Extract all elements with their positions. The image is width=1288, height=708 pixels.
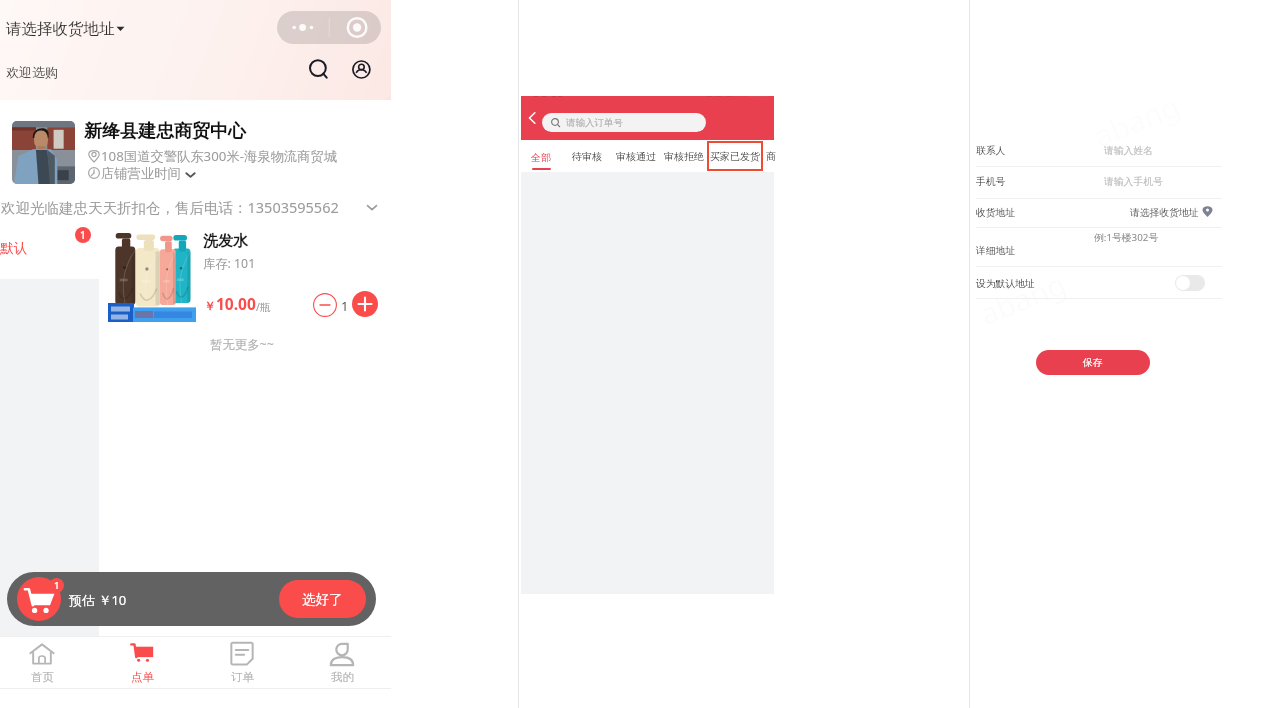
button[interactable]: 首页 — [0, 637, 92, 688]
button[interactable]: 选好了 — [279, 580, 366, 618]
staticText: 1 — [341, 297, 349, 315]
staticText: 点单 — [131, 670, 154, 684]
button[interactable]: 预估 ￥10 — [7, 572, 376, 626]
staticText: 联系人 — [976, 145, 1006, 157]
button[interactable]: 手机号 — [976, 167, 1222, 198]
staticText: 审核拒绝 — [664, 150, 704, 163]
staticText: 订单 — [231, 670, 254, 684]
button[interactable]: 联系人 — [976, 131, 1222, 166]
staticText: 洗发水 — [203, 232, 248, 251]
button[interactable]: 审核通过 — [612, 140, 652, 172]
button[interactable]: 减少数量 — [313, 293, 337, 317]
staticText: abang — [974, 263, 1072, 334]
staticText: 1 — [80, 228, 86, 242]
button[interactable]: 增加数量 — [352, 291, 378, 317]
staticText: ￥ — [204, 299, 216, 313]
button[interactable]: 保存 — [1036, 350, 1150, 375]
button[interactable]: 买家已发货 — [706, 140, 756, 172]
staticText: 库存: 101 — [203, 255, 256, 272]
staticText: 10.00 — [216, 293, 256, 314]
button[interactable]: 收货地址 — [976, 199, 1222, 227]
staticText: /瓶 — [256, 300, 271, 314]
button[interactable]: 点单 — [92, 637, 192, 688]
button[interactable]: 个人中心 — [349, 56, 375, 82]
staticText: 预估 ￥10 — [69, 591, 127, 609]
staticText: 欢迎选购 — [6, 64, 58, 80]
staticText: 买家已发货 — [710, 150, 760, 163]
staticText: 全部 — [531, 151, 551, 164]
staticText: 待审核 — [572, 150, 602, 163]
staticText: 我的 — [331, 670, 354, 684]
staticText: 请输入姓名 — [1104, 145, 1153, 157]
staticText: 选好了 — [302, 591, 343, 608]
staticText: 请输入订单号 — [566, 117, 623, 129]
staticText: 商 — [766, 150, 776, 163]
staticText: 首页 — [31, 670, 54, 684]
staticText: 108国道交警队东300米-海泉物流商贸城 — [101, 147, 338, 165]
staticText: 默认 — [0, 240, 28, 257]
button[interactable]: 请输入订单号 — [542, 113, 706, 132]
button[interactable]: 设为默认地址开关 — [1175, 275, 1205, 291]
button[interactable]: 搜索 — [305, 56, 331, 82]
button[interactable] — [525, 140, 558, 172]
staticText: 请选择收货地址 — [6, 19, 115, 39]
button[interactable]: 我的 — [292, 637, 392, 688]
button[interactable]: 审核拒绝 — [660, 140, 700, 172]
button[interactable]: 订单 — [192, 637, 292, 688]
staticText: 详细地址 — [976, 245, 1016, 257]
staticText: abang — [1088, 85, 1186, 156]
staticText: 新绛县建忠商贸中心 — [84, 120, 246, 143]
button[interactable]: 购物车 — [17, 577, 61, 621]
button[interactable]: 待审核 — [568, 140, 598, 172]
staticText: 请选择收货地址 — [1130, 207, 1199, 219]
staticText: 例:1号楼302号 — [1094, 231, 1159, 244]
staticText: 1 — [54, 579, 60, 592]
staticText: 审核通过 — [616, 150, 656, 163]
button[interactable]: 商 — [762, 140, 772, 172]
staticText: 欢迎光临建忠天天折扣仓，售后电话：13503595562 — [1, 197, 339, 217]
button[interactable]: 返回 — [524, 110, 540, 126]
button[interactable]: 默认 — [0, 218, 99, 279]
staticText: 请输入手机号 — [1104, 176, 1163, 188]
staticText: 手机号 — [976, 176, 1006, 188]
staticText: 暂无更多~~ — [210, 336, 274, 353]
staticText: 设为默认地址 — [976, 278, 1035, 290]
staticText: 收货地址 — [976, 207, 1016, 219]
staticText: 店铺营业时间 — [101, 165, 181, 182]
staticText: 保存 — [1083, 357, 1103, 369]
